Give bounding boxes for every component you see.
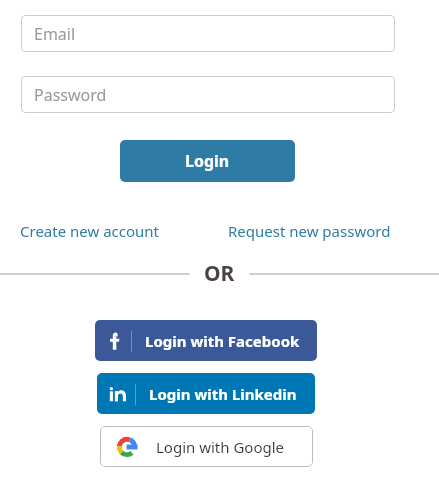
button[interactable]: Password [21,76,395,113]
staticText: OR [204,259,235,288]
button[interactable]: Login with Facebook [95,320,317,361]
button[interactable]: Create new account [20,219,159,243]
button[interactable]: Request new password [228,219,391,243]
button[interactable]: Login [120,140,295,182]
staticText: Password [34,84,107,106]
staticText: Request new password [228,221,391,241]
button[interactable]: Email [21,15,395,52]
staticText: Login with Google [156,437,285,457]
staticText: Login with Facebook [145,331,300,351]
staticText: Login with Linkedin [149,384,297,404]
staticText: Login [185,150,230,172]
button[interactable]: Login with Google [100,426,313,467]
button[interactable]: Login with Linkedin [97,373,315,414]
staticText: Email [34,23,76,45]
staticText: Create new account [20,221,159,241]
